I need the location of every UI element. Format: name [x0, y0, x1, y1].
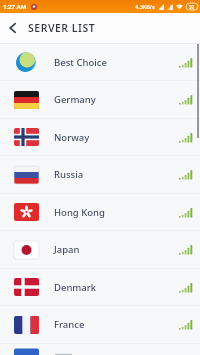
staticText: France: [54, 318, 85, 331]
staticText: Hong Kong: [54, 206, 105, 219]
staticText: Best Choice: [54, 56, 107, 69]
staticText: SERVER LIST: [28, 21, 96, 35]
button[interactable]: Denmark: [0, 269, 200, 306]
staticText: 50: [189, 4, 195, 10]
button[interactable]: Norway: [0, 119, 200, 156]
staticText: Germany: [54, 93, 96, 106]
button[interactable]: France: [0, 306, 200, 344]
staticText: Japan: [54, 243, 80, 256]
button[interactable]: Best Choice: [0, 44, 200, 81]
staticText: Norway: [54, 131, 90, 144]
staticText: Denmark: [54, 281, 97, 294]
staticText: Russia: [54, 168, 84, 181]
button[interactable]: Hong Kong: [0, 194, 200, 231]
staticText: 1:27 AM: [3, 3, 27, 11]
button[interactable]: [0, 15, 26, 41]
button[interactable]: [0, 344, 200, 355]
button[interactable]: Japan: [0, 231, 200, 269]
button[interactable]: Germany: [0, 81, 200, 119]
staticText: 4.3KB/s: [135, 3, 155, 10]
button[interactable]: Russia: [0, 156, 200, 194]
